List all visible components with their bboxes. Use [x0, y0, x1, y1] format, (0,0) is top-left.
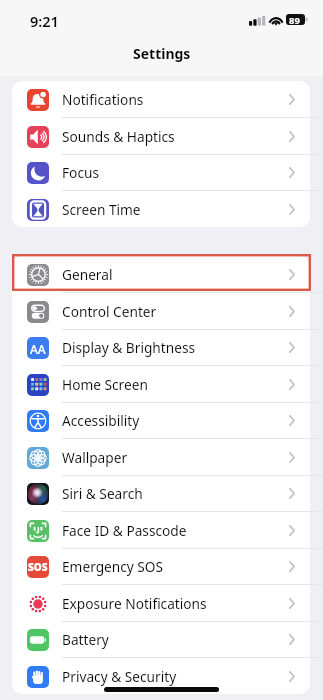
- staticText: Exposure Notifications: [62, 594, 207, 613]
- button[interactable]: Battery: [12, 621, 310, 658]
- staticText: Siri & Search: [62, 484, 143, 503]
- button[interactable]: Home Screen: [12, 366, 310, 403]
- button[interactable]: Accessibility: [12, 402, 310, 439]
- staticText: Accessibility: [62, 411, 140, 430]
- button[interactable]: Sounds & Haptics: [12, 118, 310, 155]
- staticText: Focus: [62, 163, 99, 182]
- staticText: General: [62, 265, 113, 284]
- button[interactable]: Exposure Notifications: [12, 585, 310, 622]
- button[interactable]: Control Center: [12, 293, 310, 330]
- staticText: Emergency SOS: [62, 557, 164, 576]
- button[interactable]: Face ID & Passcode: [12, 512, 310, 549]
- button[interactable]: Privacy & Security: [12, 658, 310, 695]
- staticText: Wallpaper: [62, 448, 128, 467]
- button[interactable]: SOS: [12, 548, 310, 585]
- staticText: Face ID & Passcode: [62, 521, 187, 540]
- staticText: Display & Brightness: [62, 338, 196, 357]
- staticText: Control Center: [62, 302, 157, 321]
- staticText: AA: [30, 341, 46, 357]
- staticText: Screen Time: [62, 200, 141, 219]
- button[interactable]: Siri & Search: [12, 475, 310, 512]
- staticText: 89: [289, 14, 300, 25]
- button[interactable]: Wallpaper: [12, 439, 310, 476]
- staticText: Battery: [62, 630, 109, 649]
- staticText: Home Screen: [62, 375, 148, 394]
- button[interactable]: AA: [12, 329, 310, 366]
- button[interactable]: Screen Time: [12, 191, 310, 228]
- staticText: Notifications: [62, 90, 144, 109]
- button[interactable]: Notifications: [12, 81, 310, 118]
- staticText: Privacy & Security: [62, 667, 177, 686]
- button[interactable]: Focus: [12, 154, 310, 191]
- staticText: 9:21: [30, 11, 59, 31]
- button[interactable]: General: [12, 256, 310, 293]
- staticText: Settings: [133, 44, 191, 63]
- staticText: Sounds & Haptics: [62, 127, 175, 146]
- staticText: SOS: [28, 560, 48, 574]
